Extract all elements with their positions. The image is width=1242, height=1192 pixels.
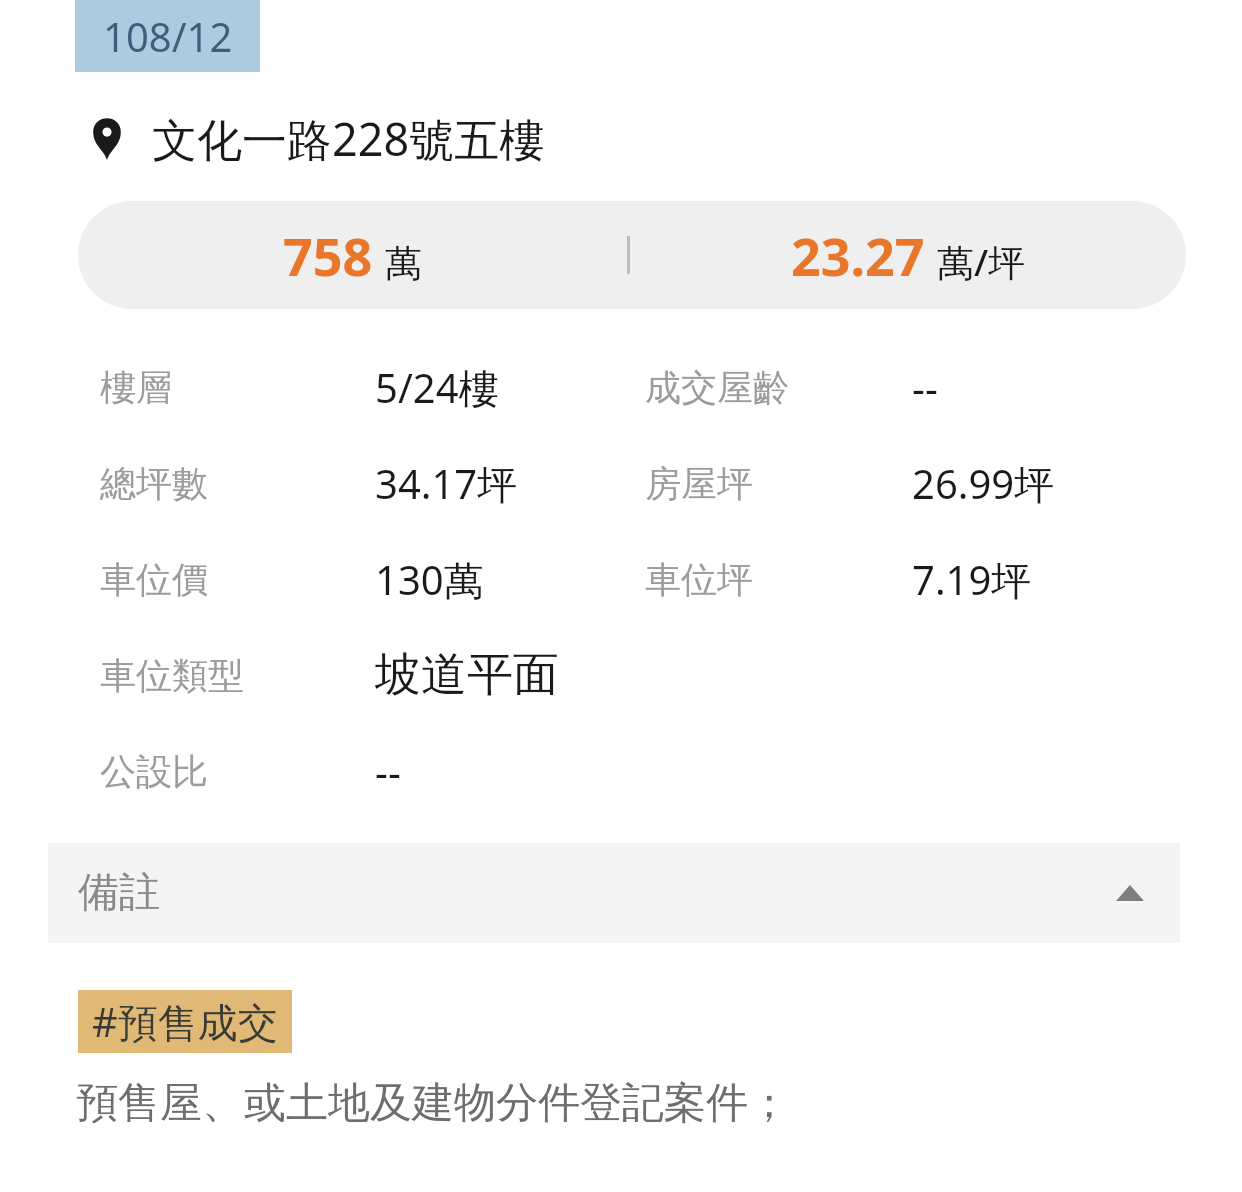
staticText: 總坪數 <box>100 461 300 506</box>
staticText: 34.17坪 <box>375 456 518 511</box>
staticText: 108/12 <box>103 9 233 63</box>
staticText: 備註 <box>78 867 1116 919</box>
staticText: 車位坪 <box>645 557 835 602</box>
button[interactable]: 備註 <box>48 843 1180 943</box>
staticText: 車位價 <box>100 557 300 602</box>
button[interactable]: 758 <box>78 201 1186 309</box>
staticText: 5/24樓 <box>375 360 499 415</box>
other: Collapse remarks <box>1116 885 1144 901</box>
staticText: 文化一路228號五樓 <box>152 108 545 169</box>
staticText: 26.99坪 <box>912 456 1055 511</box>
staticText: 萬/坪 <box>937 236 1026 287</box>
staticText: 23.27 <box>791 220 925 291</box>
staticText: 130萬 <box>375 552 484 607</box>
button[interactable]: #預售成交 <box>78 990 292 1053</box>
staticText: 758 <box>283 220 373 291</box>
staticText: 預售屋、或土地及建物分件登記案件； <box>76 1077 790 1130</box>
staticText: 坡道平面 <box>375 646 559 704</box>
button[interactable]: 108/12 <box>75 0 260 72</box>
staticText: 樓層 <box>100 365 300 410</box>
staticText: 房屋坪 <box>645 461 835 506</box>
button[interactable]: 文化一路228號五樓 <box>92 108 545 169</box>
staticText: 7.19坪 <box>912 552 1032 607</box>
staticText: #預售成交 <box>92 994 278 1049</box>
staticText: -- <box>375 744 401 798</box>
staticText: 成交屋齡 <box>645 365 835 410</box>
staticText: 萬 <box>385 240 422 287</box>
staticText: -- <box>912 360 938 414</box>
staticText: 公設比 <box>100 749 300 794</box>
staticText: 車位類型 <box>100 653 300 698</box>
